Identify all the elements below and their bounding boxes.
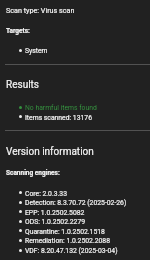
staticText: Remediation: 1.0.2502.2088 (25, 237, 110, 245)
staticText: System (25, 47, 48, 55)
staticText: No harmful items found (25, 104, 97, 112)
staticText: Scan type: Virus scan (6, 6, 75, 14)
staticText: Core: 2.0.3.33 (25, 190, 67, 198)
staticText: Version information (6, 146, 94, 158)
staticText: Items scanned: 13176 (25, 114, 92, 122)
staticText: EPP: 1.0.2502.5082 (25, 209, 85, 217)
staticText: Detection: 8.3.70.72 (2025-02-26) (25, 199, 127, 207)
staticText: Targets: (6, 27, 30, 35)
staticText: Results (6, 79, 40, 91)
staticText: Quarantine: 1.0.2502.1518 (25, 228, 105, 236)
staticText: ODS: 1.0.2502.2279 (25, 218, 86, 226)
staticText: VDF: 8.20.47.132 (2025-03-04) (25, 247, 118, 255)
staticText: Scanning engines: (6, 169, 60, 177)
